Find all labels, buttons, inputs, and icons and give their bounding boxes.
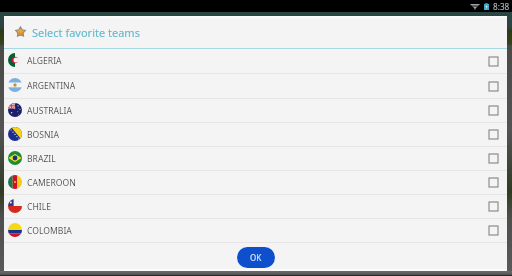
staticText: ALGERIA <box>27 55 62 67</box>
staticText: CHILE <box>27 201 51 213</box>
button[interactable]: COLOMBIA <box>4 219 507 242</box>
staticText: CAMEROON <box>27 177 76 189</box>
button[interactable]: ALGERIA <box>4 49 507 73</box>
button[interactable]: ARGENTINA <box>4 74 507 98</box>
staticText: OK <box>250 252 262 263</box>
button[interactable]: CHILE <box>4 195 507 218</box>
staticText: BRAZIL <box>27 153 56 165</box>
button[interactable]: CAMEROON <box>4 171 507 194</box>
staticText: COLOMBIA <box>27 225 72 237</box>
button[interactable]: OK <box>237 247 275 268</box>
button[interactable]: AUSTRALIA <box>4 99 507 122</box>
staticText: AUSTRALIA <box>27 105 73 117</box>
staticText: 8:38 <box>493 1 510 12</box>
button[interactable]: BOSNIA <box>4 123 507 146</box>
staticText: Select favorite teams <box>32 25 140 40</box>
staticText: BOSNIA <box>27 129 59 141</box>
staticText: ARGENTINA <box>27 80 76 92</box>
button[interactable]: BRAZIL <box>4 147 507 170</box>
